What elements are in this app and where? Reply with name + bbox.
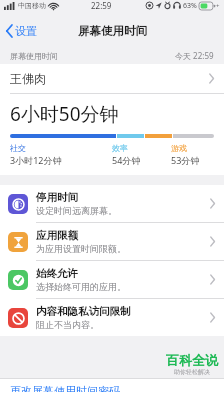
staticText: 阻止不当内容。: [36, 319, 99, 330]
staticText: 屏幕使用时间: [10, 51, 58, 61]
staticText: 53分钟: [171, 154, 200, 166]
button[interactable]: 6小时50分钟: [0, 94, 224, 175]
staticText: 屏幕使用时间: [78, 24, 147, 38]
staticText: 王佛肉: [10, 71, 46, 86]
other: 展开: [210, 237, 215, 246]
staticText: 助你轻松解决: [174, 368, 210, 376]
button[interactable]: 王佛肉: [0, 64, 224, 93]
other: 展开: [210, 199, 215, 208]
button[interactable]: 更改屏幕使用时间密码: [0, 379, 224, 400]
staticText: 始终允许: [36, 267, 78, 280]
other: 展开: [210, 313, 215, 322]
staticText: 设置: [15, 24, 37, 38]
staticText: 63%: [183, 1, 197, 11]
staticText: 百科全说: [166, 352, 218, 368]
staticText: 今天 22:59: [175, 50, 214, 61]
staticText: 更改屏幕使用时间密码: [10, 384, 120, 392]
staticText: 6小时50分钟: [10, 101, 119, 127]
staticText: 选择始终可用的应用。: [36, 281, 126, 292]
staticText: 22:59: [91, 0, 112, 11]
staticText: 3小时12分钟: [10, 154, 62, 166]
button[interactable]: 应用限额: [0, 223, 224, 260]
staticText: 社交: [10, 143, 26, 153]
other: 展开: [210, 275, 215, 284]
staticText: 设定时间远离屏幕。: [36, 205, 117, 216]
staticText: 54分钟: [112, 154, 141, 166]
button[interactable]: 内容和隐私访问限制: [0, 299, 224, 336]
button[interactable]: 停用时间: [0, 185, 224, 222]
staticText: 内容和隐私访问限制: [36, 305, 131, 318]
staticText: 游戏: [171, 143, 187, 153]
staticText: 中国移动: [18, 1, 46, 10]
staticText: +: [216, 2, 220, 10]
staticText: 效率: [112, 143, 128, 153]
other: 展开: [209, 74, 214, 83]
button[interactable]: 设置: [0, 21, 45, 41]
staticText: 停用时间: [36, 191, 78, 204]
button[interactable]: 始终允许: [0, 261, 224, 298]
staticText: 为应用设置时间限额。: [36, 243, 126, 254]
staticText: 应用限额: [36, 229, 78, 242]
